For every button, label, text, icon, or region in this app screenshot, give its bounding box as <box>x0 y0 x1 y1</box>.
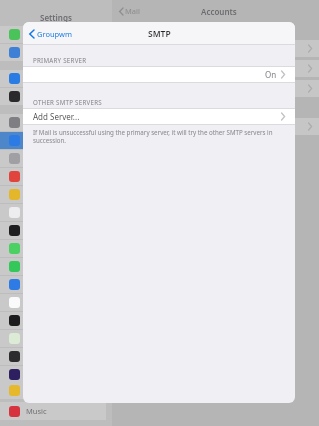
staticText: PRIMARY SERVER <box>33 56 87 64</box>
button[interactable] <box>0 114 106 131</box>
staticText: Settings <box>40 12 72 23</box>
button[interactable] <box>0 70 106 87</box>
button[interactable]: Mail <box>117 4 142 18</box>
button[interactable]: Music <box>0 402 106 420</box>
staticText: Mail <box>125 6 140 16</box>
staticText: SMTP <box>148 28 171 40</box>
button[interactable] <box>0 348 106 365</box>
button[interactable]: Groupwm <box>23 25 80 43</box>
button[interactable] <box>0 44 106 61</box>
button[interactable] <box>0 294 106 311</box>
staticText: If Mail is unsuccessful using the primar… <box>33 128 281 144</box>
button[interactable] <box>0 204 106 221</box>
button[interactable] <box>0 132 106 149</box>
button[interactable] <box>112 60 319 77</box>
button[interactable] <box>0 222 106 239</box>
button[interactable] <box>112 80 319 97</box>
button[interactable] <box>0 240 106 257</box>
button[interactable]: On <box>23 67 295 82</box>
button[interactable] <box>0 382 106 399</box>
button[interactable] <box>112 118 319 135</box>
button[interactable] <box>0 150 106 167</box>
button[interactable] <box>0 168 106 185</box>
button[interactable] <box>0 330 106 347</box>
button[interactable] <box>0 366 106 383</box>
staticText: Accounts <box>201 6 237 17</box>
staticText: Groupwm <box>37 29 72 39</box>
staticText: Add Server... <box>33 111 80 122</box>
staticText: Music <box>26 406 47 416</box>
staticText: On <box>265 69 277 80</box>
button[interactable]: Add Server... <box>23 109 295 124</box>
button[interactable] <box>0 88 106 105</box>
button[interactable] <box>0 276 106 293</box>
button[interactable] <box>0 258 106 275</box>
button[interactable] <box>0 186 106 203</box>
staticText: OTHER SMTP SERVERS <box>33 98 102 106</box>
button[interactable] <box>0 312 106 329</box>
button[interactable] <box>0 26 106 43</box>
button[interactable] <box>112 40 319 57</box>
